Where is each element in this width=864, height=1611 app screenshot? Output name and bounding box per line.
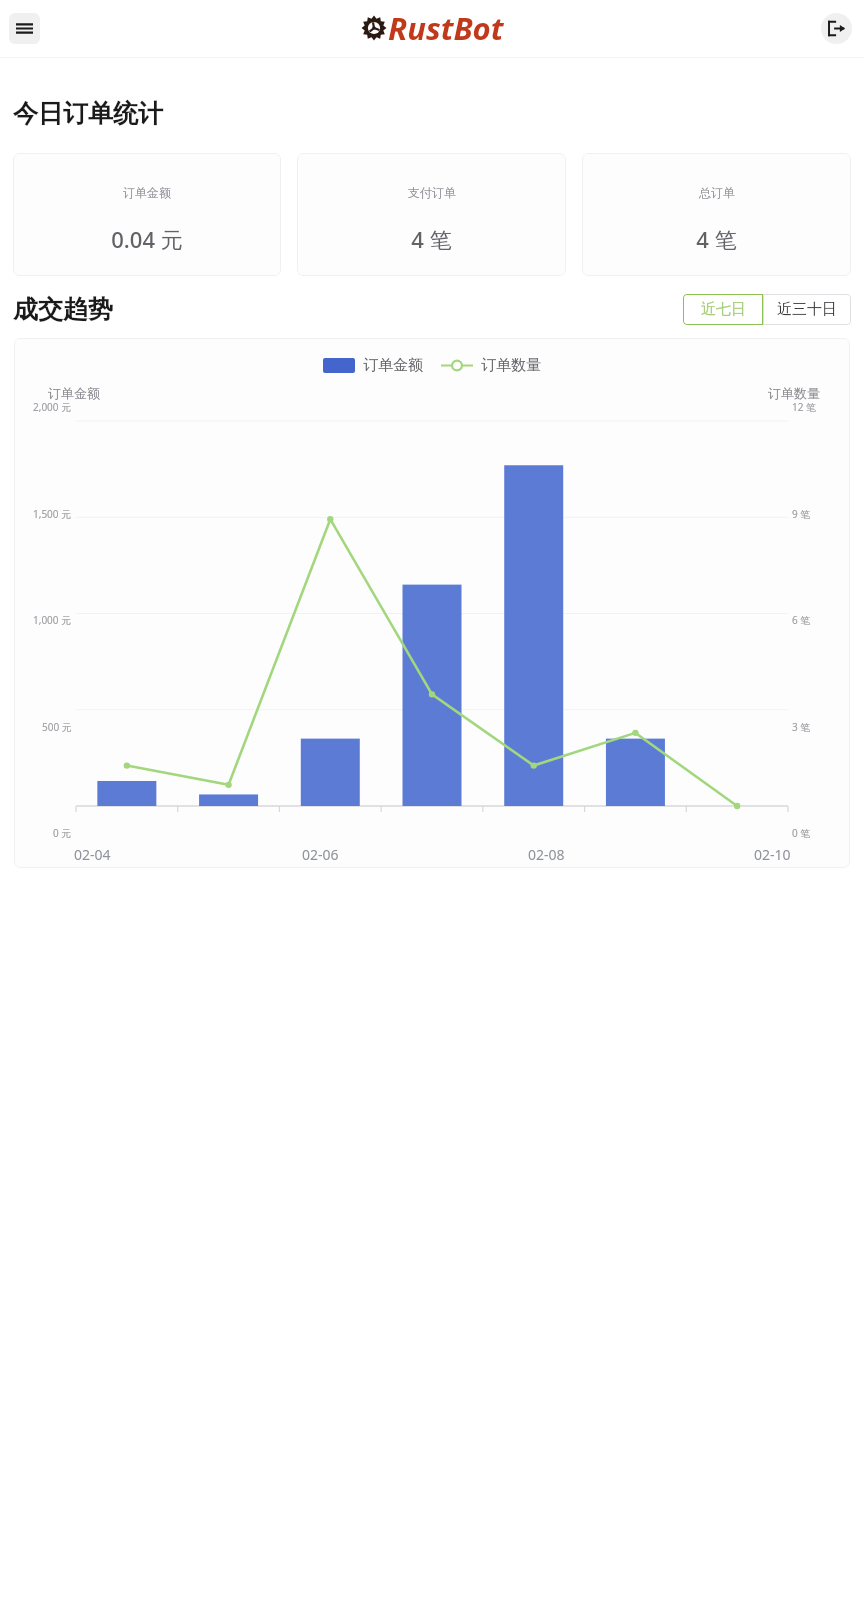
staticText: 02-06 [302,845,339,864]
staticText: 1,500 元 [33,507,72,521]
staticText: 4 笔 [411,224,452,254]
staticText: 订单数量 [481,356,541,375]
staticText: 1,000 元 [33,613,72,627]
staticText: 02-10 [754,845,791,864]
staticText: 订单金额 [48,385,100,401]
staticText: 9 笔 [792,507,811,521]
staticText: 订单金额 [123,185,171,200]
staticText: 02-08 [528,845,565,864]
button[interactable]: 近三十日 [763,294,851,325]
staticText: 02-04 [74,845,111,864]
button[interactable]: 订单金额 [13,153,281,276]
staticText: 总订单 [699,185,735,200]
staticText: 2,000 元 [33,400,72,414]
button[interactable]: 近七日 [683,294,763,325]
staticText: 0 笔 [792,826,811,840]
button[interactable]: 总订单 [582,153,851,276]
staticText: 成交趋势 [13,294,113,325]
staticText: 4 笔 [696,224,737,254]
staticText: 12 笔 [792,400,817,414]
staticText: 3 笔 [792,720,811,734]
staticText: 近七日 [701,300,746,319]
staticText: 6 笔 [792,613,811,627]
staticText: 今日订单统计 [13,98,163,129]
button[interactable]: 支付订单 [297,153,566,276]
staticText: 订单金额 [363,356,423,375]
staticText: 订单数量 [768,385,820,401]
staticText: 0 元 [53,826,72,840]
staticText: 近三十日 [777,300,837,319]
staticText: RustBot [388,7,504,49]
button[interactable]: Logout [821,13,852,44]
staticText: 支付订单 [408,185,456,200]
button[interactable]: Menu [9,13,40,44]
staticText: 500 元 [42,720,72,734]
staticText: 0.04 元 [111,224,183,254]
